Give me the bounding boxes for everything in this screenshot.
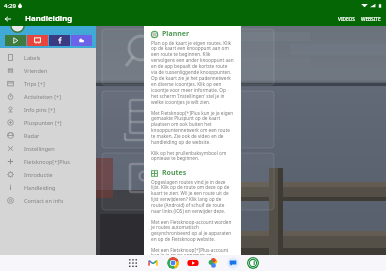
- staticText: Trips [+]: [24, 80, 45, 87]
- staticText: WEBSITE: [361, 16, 381, 22]
- staticText: Opgeslagen routes vind je in deze lijst.…: [151, 179, 234, 215]
- button[interactable]: Google Photos: [207, 257, 219, 269]
- staticText: Met Fietsknoop[+]Plus kun je je eigen ge…: [151, 110, 234, 146]
- button[interactable]: Cloud: [71, 35, 92, 46]
- button[interactable]: Messages: [227, 257, 239, 269]
- staticText: Introductie: [24, 171, 53, 178]
- staticText: Handleiding: [25, 13, 73, 24]
- staticText: Pluspunten [+]: [24, 119, 62, 126]
- button[interactable]: YouTube: [27, 35, 48, 46]
- button[interactable]: Fietsknoop[+]Plus: [0, 155, 96, 168]
- button[interactable]: Chrome: [167, 257, 179, 269]
- staticText: Contact en info: [24, 197, 64, 204]
- staticText: Fietsknoop[+]Plus: [24, 158, 70, 165]
- staticText: Routes: [162, 168, 187, 178]
- button[interactable]: Play Store: [5, 35, 26, 46]
- button[interactable]: Trips [+]: [0, 77, 96, 90]
- button[interactable]: All apps: [127, 257, 139, 269]
- button[interactable]: Facebook: [49, 35, 70, 46]
- button[interactable]: Labels: [0, 51, 96, 64]
- staticText: Planner: [162, 29, 190, 39]
- button[interactable]: Info pins [+]: [0, 103, 96, 116]
- staticText: Klik op het prullenbaksymbool om opnieuw…: [151, 150, 234, 162]
- staticText: Instellingen: [24, 145, 55, 152]
- button[interactable]: Handleiding: [0, 181, 96, 194]
- staticText: VIDEOS: [338, 16, 355, 22]
- button[interactable]: Vrienden: [0, 64, 96, 77]
- button[interactable]: Instellingen: [0, 142, 96, 155]
- button[interactable]: Activiteiten [+]: [0, 90, 96, 103]
- staticText: 4:29: [4, 2, 16, 10]
- staticText: Met een Fietsknoop[+]Plus-account kun je…: [151, 247, 234, 259]
- button[interactable]: Pluspunten [+]: [0, 116, 96, 129]
- staticText: Plan op de kaart je eigen routes. Klik o…: [151, 40, 234, 106]
- button[interactable]: Introductie: [0, 168, 96, 181]
- button[interactable]: Gmail: [147, 257, 159, 269]
- button[interactable]: YouTube: [187, 257, 199, 269]
- button[interactable]: VIDEOS: [335, 13, 358, 25]
- staticText: Vrienden: [24, 67, 48, 74]
- button[interactable]: Back: [0, 11, 15, 26]
- staticText: Activiteiten [+]: [24, 93, 61, 100]
- staticText: Labels: [24, 54, 41, 61]
- button[interactable]: Contact en info: [0, 194, 96, 207]
- button[interactable]: WEBSITE: [358, 13, 384, 25]
- staticText: Met een Fietsknoop-account worden je rou…: [151, 219, 234, 243]
- staticText: Info pins [+]: [24, 106, 55, 113]
- button[interactable]: Fietsknoop: [247, 257, 259, 269]
- staticText: Radar: [24, 132, 40, 139]
- staticText: Handleiding: [24, 184, 56, 191]
- button[interactable]: Radar: [0, 129, 96, 142]
